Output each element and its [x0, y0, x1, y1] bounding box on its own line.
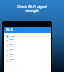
other: Wi-Fi	[6, 50, 8, 52]
button[interactable]: Wi-Fi	[4, 38, 51, 43]
button[interactable]: Wi-Fi	[4, 58, 51, 63]
button[interactable]: Wi-Fi	[4, 53, 51, 58]
staticText: Check Wi-Fi signal strength	[0, 4, 64, 13]
other: Wi-Fi	[6, 35, 9, 38]
other: Wi-Fi	[6, 40, 8, 42]
other: Wi-Fi	[6, 60, 8, 62]
staticText: Wi-Fi	[6, 28, 14, 32]
button[interactable]: Wi-Fi	[4, 43, 51, 48]
other: Wi-Fi	[6, 45, 8, 47]
button[interactable]: Wi-Fi	[4, 27, 51, 33]
button[interactable]: Wi-Fi	[4, 33, 51, 39]
other: Wi-Fi	[6, 55, 8, 57]
button[interactable]: Wi-Fi	[4, 48, 51, 53]
